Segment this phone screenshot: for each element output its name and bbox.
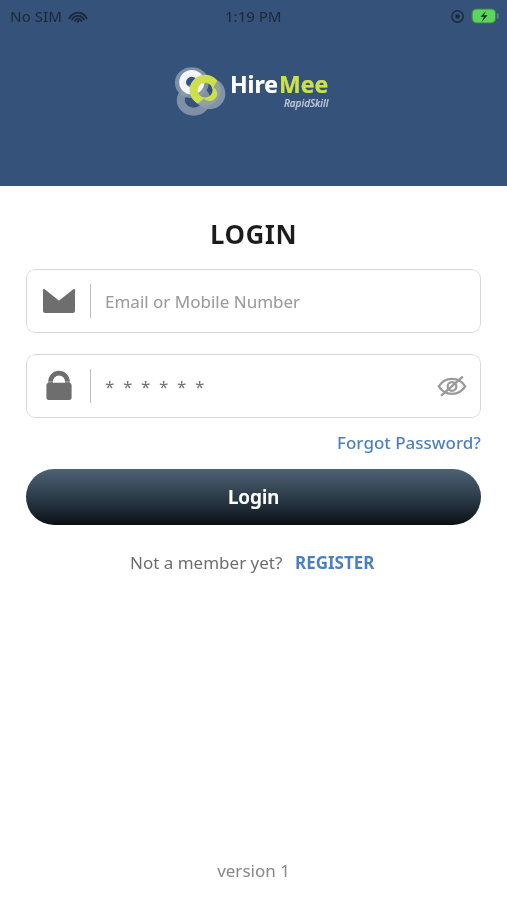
button[interactable]: REGISTER xyxy=(292,548,378,577)
staticText: Email or Mobile Number xyxy=(105,290,301,313)
staticText: Not a member yet? xyxy=(130,551,292,574)
button[interactable]: Login xyxy=(26,469,481,525)
staticText: 1:19 PM xyxy=(225,6,282,26)
staticText: version 1 xyxy=(0,859,507,882)
staticText: * xyxy=(159,375,169,398)
button[interactable]: Show password xyxy=(429,363,475,409)
staticText: * xyxy=(195,375,205,398)
staticText: No SIM xyxy=(10,6,63,26)
staticText: Forgot Password? xyxy=(337,431,481,454)
staticText: Login xyxy=(228,484,280,510)
staticText: RapidSkill xyxy=(284,96,329,110)
staticText: * xyxy=(141,375,151,398)
staticText: Mee xyxy=(279,68,329,99)
button[interactable]: Password xyxy=(26,354,481,418)
staticText: * xyxy=(105,375,115,398)
staticText: Hire xyxy=(230,68,279,99)
button[interactable]: Email xyxy=(26,269,481,333)
staticText: LOGIN xyxy=(0,216,507,251)
staticText: REGISTER xyxy=(295,551,375,574)
staticText: * xyxy=(177,375,187,398)
staticText: * xyxy=(123,375,133,398)
other: Password xyxy=(42,369,76,403)
other: Email xyxy=(42,284,76,318)
button[interactable]: Forgot Password? xyxy=(333,428,485,457)
